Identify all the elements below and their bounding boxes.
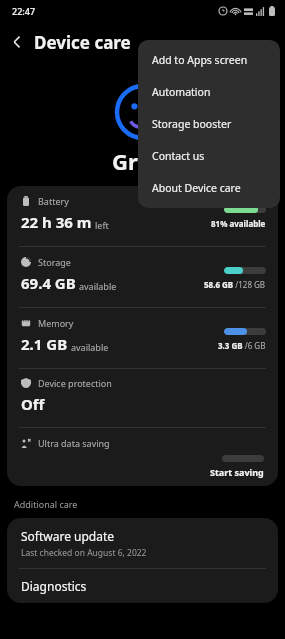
button[interactable]: Device protection <box>7 369 278 427</box>
staticText: 81% available <box>211 218 266 229</box>
staticText: 2.1 GB <box>21 334 68 354</box>
button[interactable]: About Device care <box>138 172 280 204</box>
staticText: 58.6 GB /128 GB <box>204 279 266 290</box>
staticText: Software update <box>21 528 115 544</box>
staticText: Diagnostics <box>21 578 87 594</box>
staticText: Great <box>112 146 174 176</box>
staticText: Off <box>21 394 45 414</box>
staticText: available <box>71 341 109 353</box>
button[interactable]: Software update <box>7 518 278 568</box>
staticText: Ultra data saving <box>38 437 110 449</box>
staticText: Last checked on August 6, 2022 <box>21 547 147 559</box>
staticText: 3.3 GB /6 GB <box>218 340 266 351</box>
button[interactable]: Storage <box>7 247 278 307</box>
staticText: Device care <box>34 31 131 54</box>
button[interactable]: Ultra data saving <box>7 428 278 486</box>
staticText: 22 h 36 m <box>21 212 92 232</box>
button[interactable]: Contact us <box>138 140 280 172</box>
button[interactable]: Back <box>0 25 34 59</box>
staticText: Storage <box>38 256 71 268</box>
button[interactable]: Diagnostics <box>7 569 278 603</box>
button[interactable]: Add to Apps screen <box>138 44 280 76</box>
button[interactable]: Storage booster <box>138 108 280 140</box>
staticText: About Device care <box>152 181 241 195</box>
staticText: Contact us <box>152 149 205 163</box>
staticText: Memory <box>38 317 74 329</box>
button[interactable]: Automation <box>138 76 280 108</box>
staticText: Start saving <box>210 466 264 478</box>
staticText: 22:47 <box>12 5 36 17</box>
staticText: Storage booster <box>152 117 232 131</box>
staticText: Battery <box>38 195 69 207</box>
staticText: 69.4 GB <box>21 273 76 293</box>
staticText: Automation <box>152 85 211 99</box>
staticText: available <box>79 280 117 292</box>
staticText: Additional care <box>14 498 78 510</box>
staticText: left <box>95 219 109 231</box>
staticText: Add to Apps screen <box>152 53 248 67</box>
button[interactable]: Battery <box>7 186 278 246</box>
button[interactable]: Memory <box>7 308 278 368</box>
staticText: Device protection <box>38 377 112 389</box>
